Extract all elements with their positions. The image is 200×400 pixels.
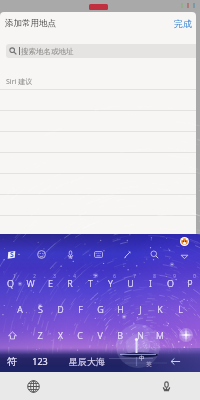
button[interactable] xyxy=(0,216,196,237)
button[interactable]: Voice input xyxy=(133,372,200,400)
staticText: P xyxy=(187,277,193,289)
staticText: 完成 xyxy=(174,18,192,29)
staticText: 5 xyxy=(93,273,96,279)
button[interactable]: Sogou input xyxy=(2,244,20,264)
button[interactable] xyxy=(0,69,196,90)
staticText: 星辰大海 xyxy=(69,356,105,367)
staticText: Y xyxy=(108,277,113,289)
staticText: L xyxy=(178,303,183,315)
button[interactable]: Backspace xyxy=(174,324,198,346)
staticText: 1 xyxy=(13,273,16,279)
staticText: 0 xyxy=(193,273,196,279)
staticText: B xyxy=(117,329,123,341)
staticText: F xyxy=(78,303,83,315)
button[interactable] xyxy=(0,111,196,132)
staticText: 中 xyxy=(139,355,145,362)
staticText: U xyxy=(127,277,134,289)
staticText: 6 xyxy=(113,273,116,279)
staticText: C xyxy=(77,329,83,341)
button[interactable]: 搜索地名或地址 xyxy=(6,44,196,58)
staticText: J xyxy=(139,303,142,315)
staticText: 添加常用地点 xyxy=(5,18,56,29)
staticText: D xyxy=(57,303,64,315)
staticText: 符 xyxy=(7,355,17,368)
button[interactable]: Voice xyxy=(61,244,79,264)
staticText: V xyxy=(97,329,103,341)
button[interactable] xyxy=(0,174,196,195)
staticText: S xyxy=(38,303,43,315)
staticText: Q xyxy=(7,277,14,289)
staticText: N xyxy=(137,329,144,341)
button[interactable]: Keyboard layout xyxy=(89,244,107,264)
button[interactable]: 完成 xyxy=(170,12,196,34)
staticText: Z xyxy=(37,329,43,341)
staticText: O xyxy=(167,277,174,289)
staticText: 7 xyxy=(133,273,136,279)
staticText: 123 xyxy=(32,355,48,367)
button[interactable]: Search xyxy=(145,244,163,264)
button[interactable] xyxy=(0,195,196,216)
button[interactable] xyxy=(0,132,196,153)
button[interactable] xyxy=(0,153,196,174)
button[interactable] xyxy=(0,90,196,111)
staticText: 8 xyxy=(153,273,156,279)
staticText: W xyxy=(26,277,35,289)
staticText: T xyxy=(88,277,93,289)
button[interactable]: Hide keyboard xyxy=(177,250,191,262)
staticText: 9 xyxy=(173,273,176,279)
staticText: G xyxy=(97,303,104,315)
button[interactable]: Emoji xyxy=(32,244,50,264)
staticText: A xyxy=(17,303,23,315)
staticText: M xyxy=(156,329,164,341)
staticText: R xyxy=(67,277,73,289)
button[interactable]: Switch language xyxy=(0,372,66,400)
staticText: 英 xyxy=(146,361,152,368)
button[interactable]: Theme xyxy=(177,235,191,248)
button[interactable]: Shift xyxy=(1,324,23,346)
staticText: 4 xyxy=(73,273,76,279)
staticText: K xyxy=(157,303,163,315)
staticText: H xyxy=(117,303,124,315)
staticText: E xyxy=(48,277,53,289)
staticText: 3 xyxy=(53,273,56,279)
staticText: X xyxy=(58,329,63,341)
staticText: S xyxy=(10,250,14,259)
button[interactable]: Enter xyxy=(162,352,188,370)
staticText: 2 xyxy=(33,273,36,279)
button[interactable]: Handwriting xyxy=(118,244,136,264)
staticText: 搜索地名或地址 xyxy=(21,47,74,56)
staticText: I xyxy=(149,277,152,289)
staticText: Siri 建议 xyxy=(6,77,33,87)
